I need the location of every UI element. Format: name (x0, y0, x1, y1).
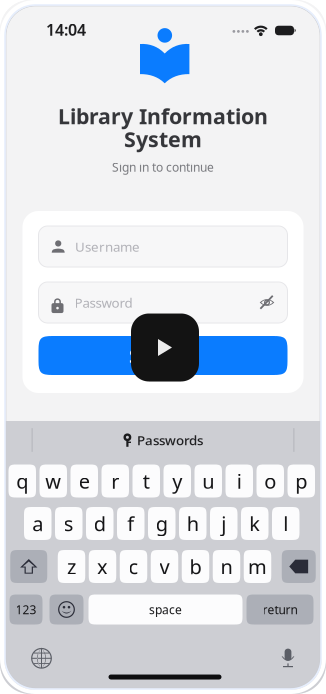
staticText: g (156, 510, 168, 537)
button[interactable]: 123 (9, 594, 42, 624)
staticText: 123 (15, 601, 36, 617)
button[interactable]: w (39, 464, 67, 497)
staticText: Passwords (137, 431, 203, 449)
button[interactable]: g (148, 507, 175, 540)
staticText: k (249, 510, 260, 537)
staticText: z (67, 553, 76, 580)
staticText: n (220, 553, 232, 580)
button[interactable]: t (132, 464, 160, 497)
staticText: 14:04 (46, 19, 86, 40)
staticText: m (248, 553, 267, 580)
staticText: i (237, 468, 242, 494)
staticText: Password (74, 294, 132, 311)
button[interactable]: Play (131, 313, 199, 381)
button[interactable]: Shift (10, 550, 47, 583)
button[interactable]: Emoji (49, 594, 83, 624)
staticText: u (202, 468, 214, 494)
button[interactable]: c (120, 550, 147, 583)
button[interactable]: space (88, 594, 242, 624)
button[interactable]: v (151, 550, 178, 583)
button[interactable]: l (272, 507, 299, 540)
staticText: return (262, 601, 297, 617)
staticText: System (124, 125, 202, 153)
button[interactable]: u (194, 464, 222, 497)
staticText: d (94, 510, 106, 537)
staticText: e (79, 468, 90, 494)
staticText: t (143, 468, 150, 494)
button[interactable]: e (70, 464, 98, 497)
button[interactable]: o (256, 464, 284, 497)
staticText: Library Information (58, 102, 268, 130)
button[interactable]: y (163, 464, 191, 497)
button[interactable]: f (117, 507, 144, 540)
button[interactable]: a (24, 507, 51, 540)
button[interactable]: i (225, 464, 253, 497)
staticText: f (127, 510, 134, 537)
staticText: x (97, 553, 108, 580)
staticText: l (283, 510, 288, 537)
staticText: v (159, 553, 169, 580)
staticText: j (221, 510, 226, 537)
staticText: Sign in to continue (112, 159, 214, 175)
staticText: h (187, 510, 199, 537)
staticText: c (128, 553, 138, 580)
staticText: Sign In (129, 342, 197, 369)
button[interactable]: m (244, 550, 271, 583)
button[interactable]: return (246, 594, 313, 624)
button[interactable]: Sign In (38, 336, 287, 375)
staticText: Username (75, 238, 140, 255)
staticText: s (64, 510, 74, 537)
staticText: y (172, 468, 182, 494)
button[interactable]: z (58, 550, 85, 583)
button[interactable]: s (55, 507, 82, 540)
button[interactable]: Passwords (83, 421, 243, 459)
staticText: r (111, 468, 119, 494)
button[interactable]: Delete (282, 550, 316, 583)
button[interactable]: b (182, 550, 209, 583)
staticText: p (295, 468, 307, 494)
staticText: b (189, 553, 201, 580)
staticText: space (149, 601, 182, 617)
staticText: o (264, 468, 276, 494)
staticText: a (32, 510, 43, 537)
button[interactable]: k (241, 507, 268, 540)
button[interactable]: q (8, 464, 36, 497)
button[interactable]: n (213, 550, 240, 583)
button[interactable]: p (287, 464, 315, 497)
button[interactable]: r (101, 464, 129, 497)
button[interactable]: j (210, 507, 237, 540)
staticText: w (45, 468, 61, 494)
button[interactable]: d (86, 507, 113, 540)
button[interactable]: Username (38, 226, 287, 267)
button[interactable]: h (179, 507, 206, 540)
staticText: q (16, 468, 28, 494)
button[interactable]: Next keyboard (31, 647, 52, 669)
button[interactable]: Password (38, 282, 287, 323)
button[interactable]: x (89, 550, 116, 583)
button[interactable]: Dictation (279, 647, 297, 668)
